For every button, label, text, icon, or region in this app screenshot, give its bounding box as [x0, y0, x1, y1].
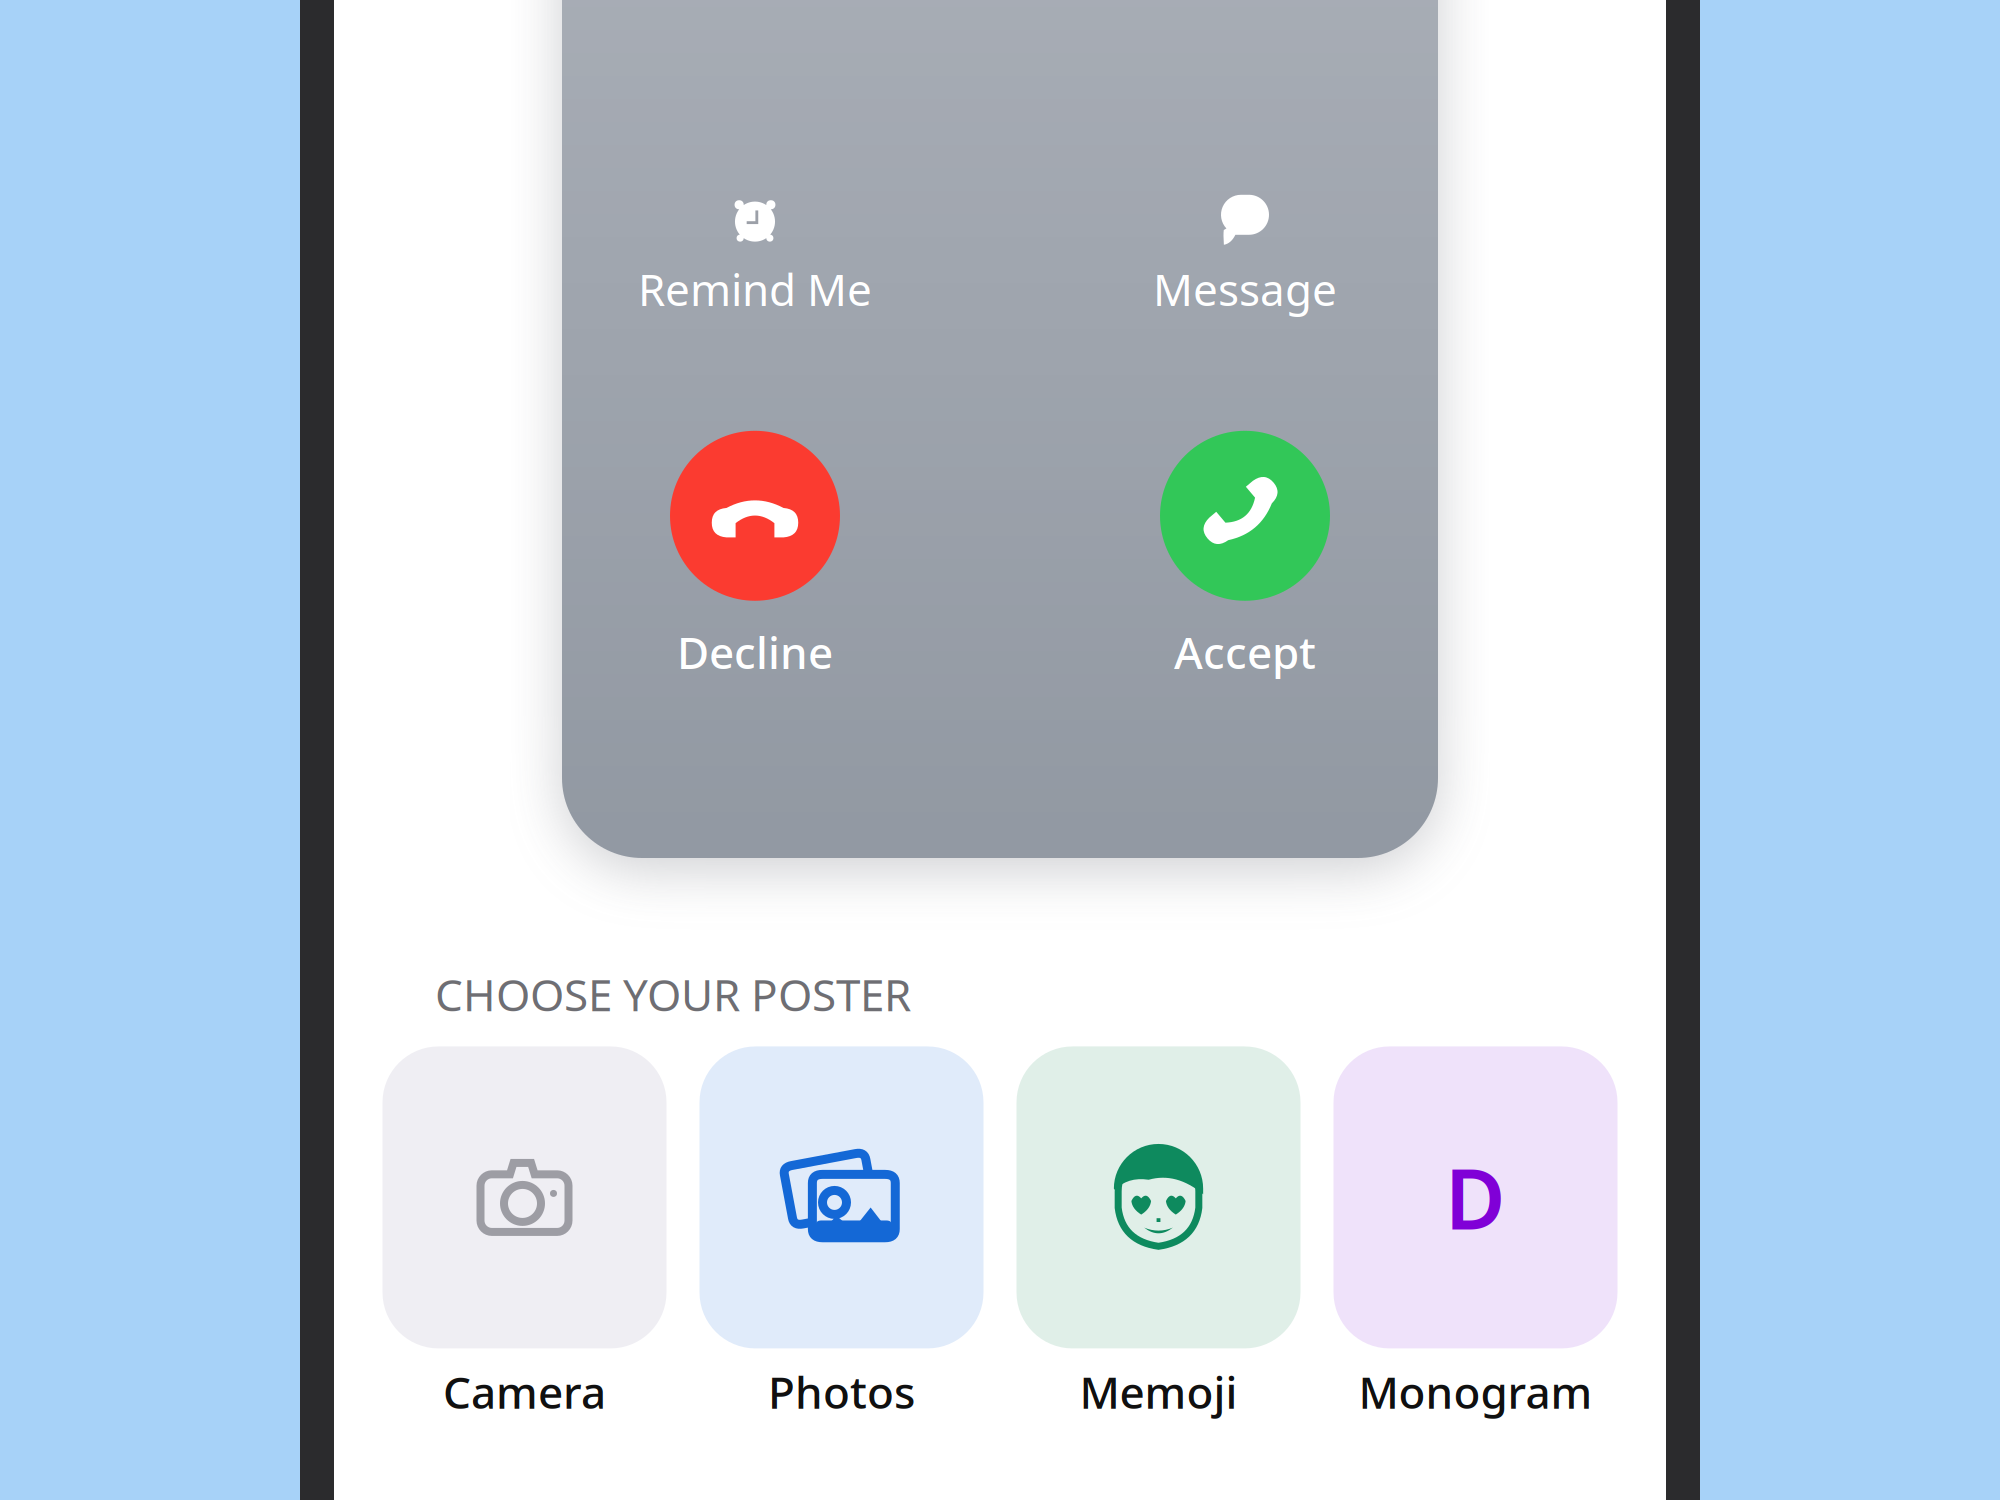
button[interactable]: Memoji — [1016, 1046, 1300, 1421]
staticText: Decline — [677, 623, 833, 681]
button[interactable]: D — [1333, 1046, 1617, 1421]
staticText: Remind Me — [638, 260, 872, 318]
button[interactable]: Accept — [1080, 431, 1410, 681]
button[interactable]: Message — [1080, 192, 1410, 318]
button[interactable]: Remind Me — [590, 192, 920, 318]
staticText: Photos — [768, 1362, 915, 1421]
staticText: D — [1445, 1142, 1506, 1252]
staticText: Camera — [443, 1362, 606, 1421]
button[interactable]: Decline — [590, 431, 920, 681]
staticText: Monogram — [1358, 1362, 1592, 1421]
button[interactable]: Camera — [382, 1046, 666, 1421]
staticText: CHOOSE YOUR POSTER — [435, 965, 911, 1023]
button[interactable]: Photos — [699, 1046, 983, 1421]
staticText: Memoji — [1079, 1362, 1237, 1421]
staticText: Accept — [1174, 623, 1316, 681]
staticText: Message — [1153, 260, 1337, 318]
